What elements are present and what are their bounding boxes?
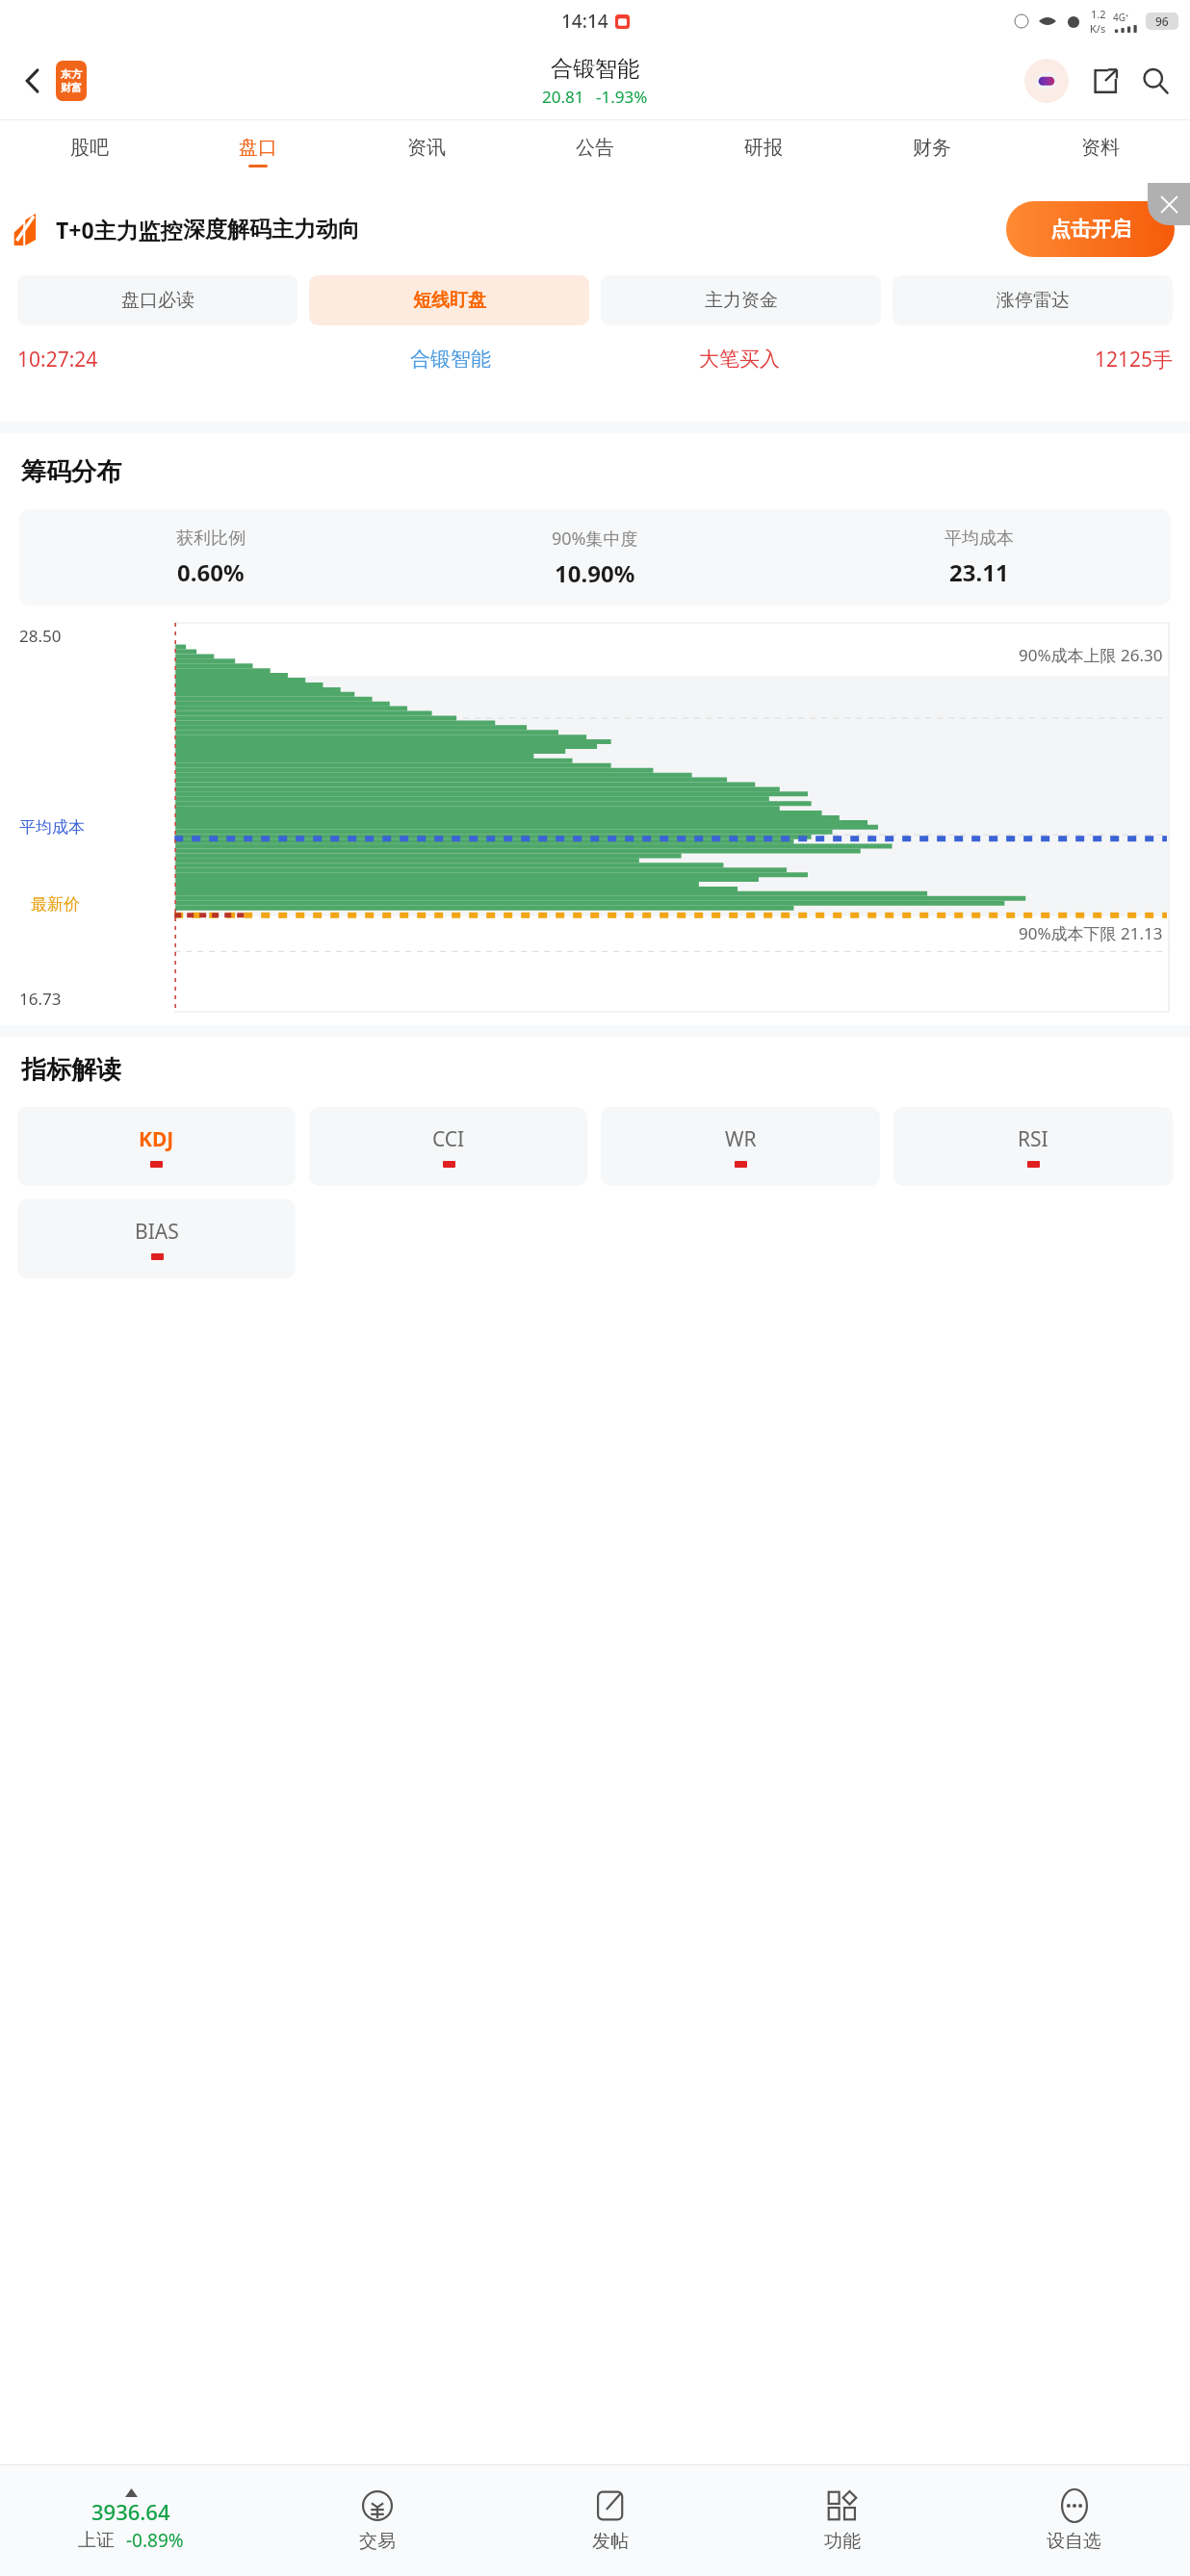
staticText: 最新价	[31, 894, 80, 914]
staticText: 交易	[359, 2530, 396, 2553]
staticText: 90%成本上限 26.30	[1019, 644, 1163, 666]
staticText: 23.11	[949, 556, 1009, 588]
button[interactable]: 涨停雷达	[892, 275, 1173, 325]
staticText: 平均成本	[19, 817, 85, 837]
staticText: KDJ	[139, 1125, 174, 1153]
button[interactable]: CCI	[309, 1107, 587, 1186]
staticText: -0.89%	[126, 2528, 184, 2553]
button[interactable]: 功能	[726, 2465, 958, 2576]
button[interactable]: Search	[1134, 60, 1177, 102]
staticText: -1.93%	[596, 86, 648, 108]
staticText: 平均成本	[944, 528, 1014, 550]
staticText: T+0主力监控	[56, 215, 183, 245]
staticText: 10:27:24	[17, 346, 306, 374]
button[interactable]: 短线盯盘	[309, 275, 589, 325]
button[interactable]: KDJ	[17, 1107, 296, 1186]
button[interactable]: 交易	[261, 2465, 494, 2576]
button[interactable]: 发帖	[494, 2465, 726, 2576]
staticText: 研报	[744, 136, 783, 160]
staticText: 12125手	[884, 346, 1173, 374]
button[interactable]: Close ad	[1148, 183, 1190, 225]
button[interactable]: 研报	[679, 119, 847, 183]
button[interactable]: Back	[10, 58, 56, 104]
staticText: 涨停雷达	[996, 289, 1070, 312]
button[interactable]: 3936.64	[0, 2465, 261, 2576]
staticText: CCI	[432, 1125, 465, 1153]
staticText: 资讯	[407, 136, 446, 160]
staticText: 公告	[576, 136, 614, 160]
staticText: 财务	[913, 136, 951, 160]
button[interactable]: 盘口	[173, 119, 342, 183]
button[interactable]: 公告	[510, 119, 679, 183]
button[interactable]: 点击开启	[1006, 201, 1175, 257]
button[interactable]: 资料	[1016, 119, 1184, 183]
staticText: 3936.64	[91, 2497, 170, 2526]
staticText: K/s	[1090, 21, 1106, 36]
staticText: 14:14	[561, 9, 608, 34]
staticText: 大笔买入	[595, 347, 884, 372]
button[interactable]: RSI	[893, 1107, 1173, 1186]
staticText: 获利比例	[176, 528, 246, 550]
staticText: 0.60%	[177, 556, 245, 588]
staticText: 功能	[824, 2530, 861, 2553]
staticText: 20.81	[542, 86, 584, 108]
staticText: 上证	[78, 2529, 115, 2552]
staticText: 东方	[61, 67, 82, 81]
staticText: 资料	[1081, 136, 1120, 160]
staticText: 96	[1155, 13, 1169, 29]
staticText: 1.2	[1091, 7, 1106, 21]
staticText: BIAS	[135, 1218, 179, 1246]
staticText: 90%集中度	[552, 527, 638, 551]
staticText: 财富	[61, 81, 82, 94]
staticText: 筹码分布	[21, 456, 121, 488]
button[interactable]: 东方	[56, 61, 87, 101]
staticText: 90%成本下限 21.13	[1019, 922, 1163, 944]
button[interactable]: BIAS	[17, 1199, 296, 1278]
button[interactable]: Share	[1084, 60, 1126, 102]
staticText: 盘口必读	[121, 289, 194, 312]
staticText: RSI	[1018, 1125, 1048, 1153]
staticText: 深度解码主力动向	[183, 216, 360, 244]
button[interactable]: 资讯	[342, 119, 510, 183]
button[interactable]: 盘口必读	[17, 275, 297, 325]
button[interactable]: 主力资金	[601, 275, 881, 325]
button[interactable]: WR	[601, 1107, 880, 1186]
staticText: 发帖	[592, 2530, 629, 2553]
button[interactable]: 设自选	[958, 2465, 1190, 2576]
staticText: WR	[725, 1125, 757, 1153]
staticText: 盘口	[239, 136, 277, 160]
staticText: 28.50	[19, 625, 62, 647]
staticText: 点击开启	[1050, 217, 1131, 242]
staticText: 10.90%	[555, 557, 635, 589]
staticText: 短线盯盘	[413, 289, 486, 312]
staticText: 指标解读	[21, 1054, 121, 1086]
staticText: 4G⁺	[1113, 11, 1129, 24]
staticText: 设自选	[1047, 2530, 1101, 2553]
staticText: 股吧	[70, 136, 109, 160]
staticText: 合锻智能	[306, 347, 595, 372]
button[interactable]: AI assistant	[1024, 59, 1069, 103]
button[interactable]: 股吧	[6, 119, 173, 183]
staticText: 合锻智能	[551, 55, 639, 83]
staticText: 16.73	[19, 988, 62, 1010]
staticText: 主力资金	[705, 289, 778, 312]
button[interactable]: 财务	[847, 119, 1016, 183]
